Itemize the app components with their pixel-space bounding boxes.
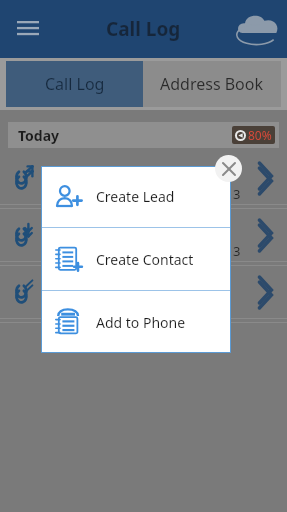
staticText: Call Log xyxy=(45,73,105,95)
button[interactable]: 9034001204 xyxy=(0,148,287,204)
button[interactable]: Add to Phone xyxy=(41,291,231,353)
staticText: Muthu xyxy=(52,271,93,289)
button[interactable]: Kanna xyxy=(0,205,287,261)
staticText: Address Book xyxy=(160,73,264,95)
staticText: Create Lead xyxy=(96,187,175,206)
staticText: Call Log xyxy=(106,16,181,42)
button[interactable]: Create Contact xyxy=(41,228,231,290)
button[interactable]: Cloud account xyxy=(231,3,283,55)
staticText: Create Contact xyxy=(96,250,194,269)
staticText: 3 xyxy=(233,242,241,260)
button[interactable]: Address Book xyxy=(143,61,281,107)
staticText: 9791928604 xyxy=(52,235,127,253)
button[interactable]: Create Lead xyxy=(41,166,231,227)
button[interactable]: Close xyxy=(215,155,242,182)
staticText: Today xyxy=(18,126,60,145)
staticText: 80% xyxy=(248,127,272,143)
button[interactable]: Call Log xyxy=(6,61,143,107)
button[interactable]: Muthu xyxy=(0,262,287,318)
staticText: 3 xyxy=(233,185,241,203)
button[interactable]: Menu xyxy=(8,9,48,49)
staticText: 9566205106 xyxy=(52,292,127,310)
staticText: Kanna xyxy=(52,214,91,232)
staticText: Add to Phone xyxy=(96,313,186,332)
